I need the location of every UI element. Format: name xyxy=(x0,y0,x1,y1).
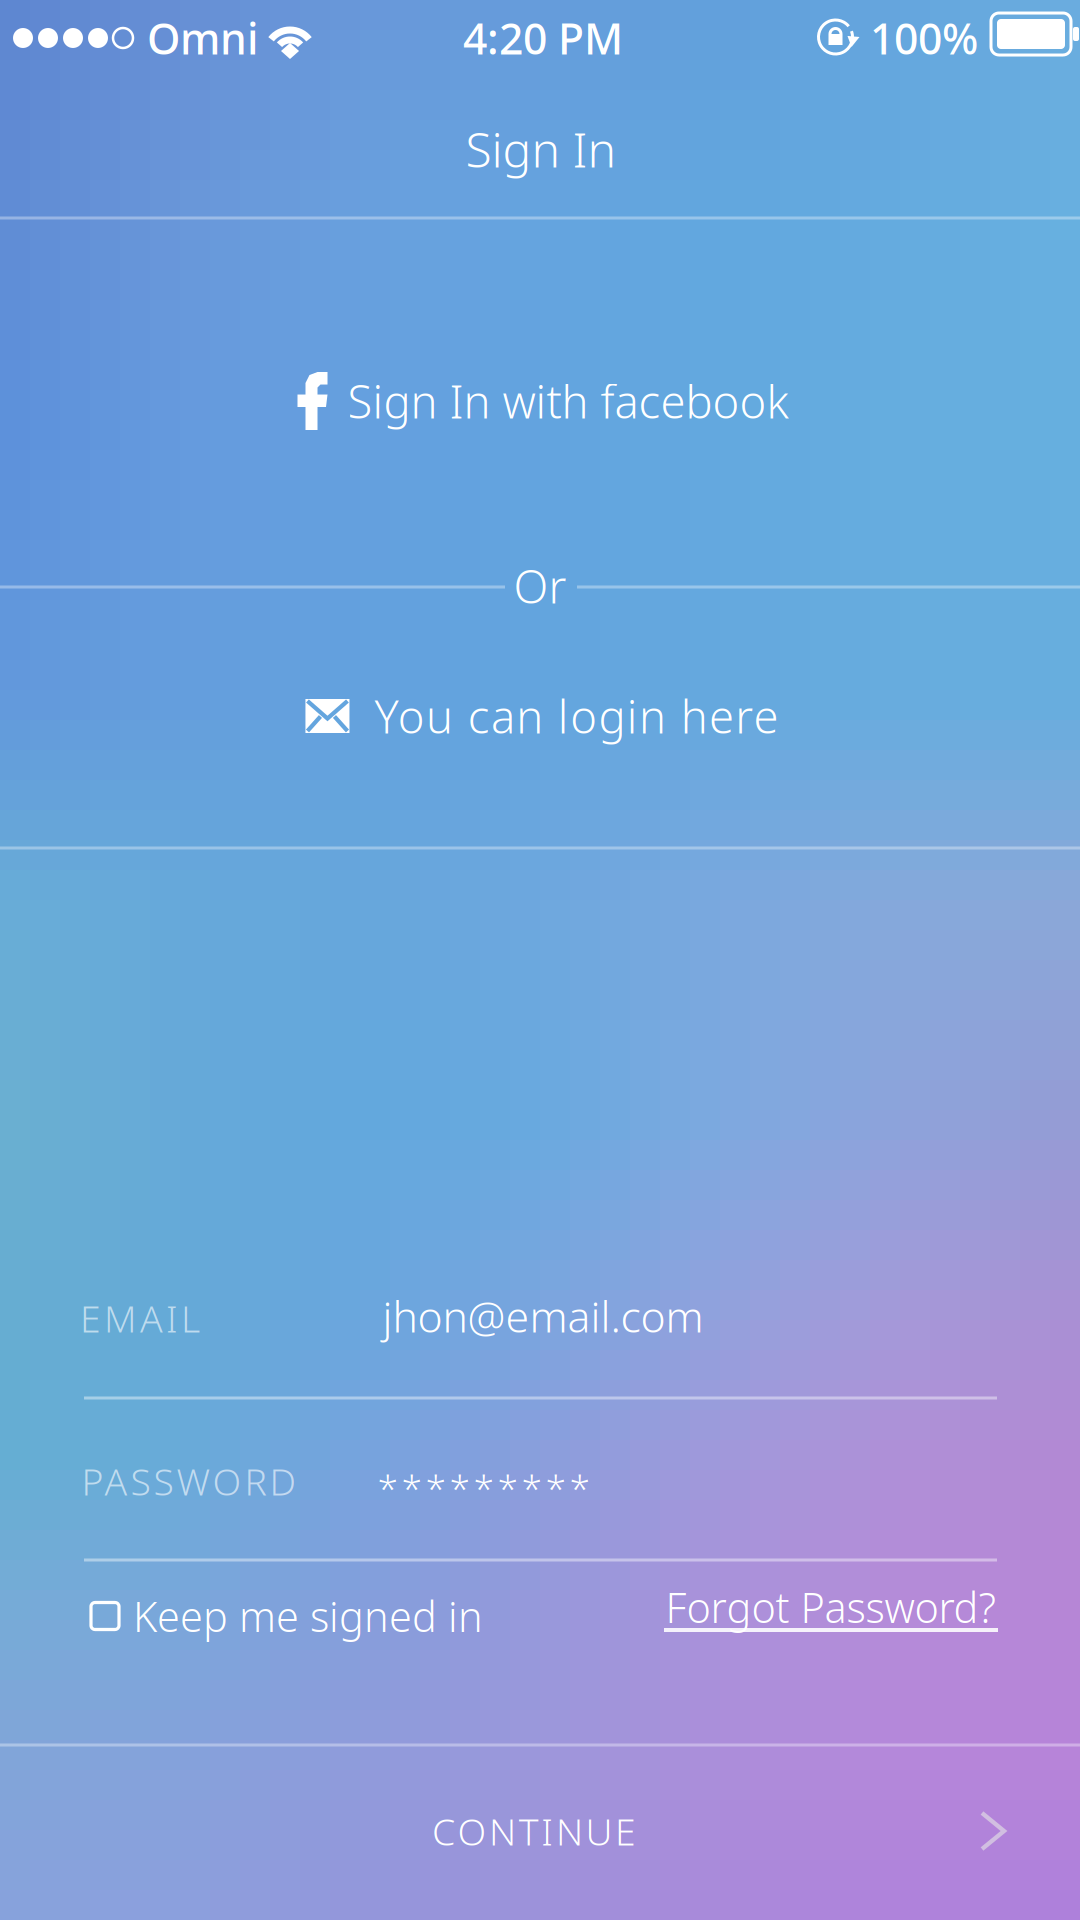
staticText: jhon@email.com xyxy=(382,1288,703,1344)
staticText: You can login here xyxy=(374,686,779,746)
staticText: EMAIL xyxy=(80,1293,200,1343)
staticText: Keep me signed in xyxy=(133,1589,483,1643)
staticText: PASSWORD xyxy=(81,1456,296,1506)
staticText: Sign In xyxy=(465,117,616,181)
button[interactable]: Keep me signed in xyxy=(93,1574,481,1658)
staticText: ********* xyxy=(377,1463,590,1513)
staticText: Omni xyxy=(147,10,259,66)
staticText: CONTINUE xyxy=(432,1806,636,1856)
button[interactable]: You can login here xyxy=(292,666,792,766)
button[interactable]: CONTINUE xyxy=(0,1743,1074,1918)
staticText: 100% xyxy=(870,10,978,66)
staticText: Sign In with facebook xyxy=(347,371,788,431)
button[interactable]: Forgot Password? xyxy=(661,1571,1001,1657)
staticText: Forgot Password? xyxy=(665,1580,996,1634)
button[interactable]: Sign In with facebook xyxy=(273,347,813,455)
staticText: 4:20 PM xyxy=(463,10,623,66)
staticText: Or xyxy=(513,556,566,616)
